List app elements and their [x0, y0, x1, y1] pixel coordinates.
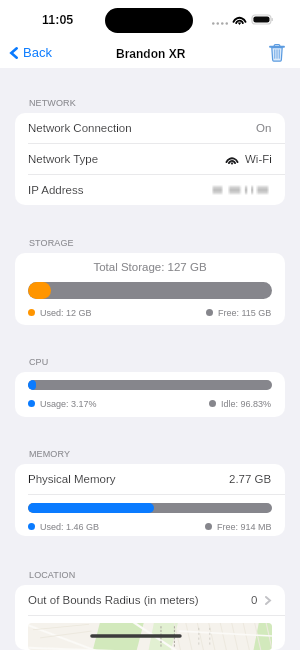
- staticText: Free: 914 MB: [217, 522, 272, 532]
- staticText: 0: [251, 594, 258, 607]
- staticText: Total Storage: 127 GB: [28, 261, 272, 275]
- staticText: Back: [23, 45, 52, 60]
- button[interactable]: Physical Memory: [15, 464, 285, 494]
- button[interactable]: IP Address: [15, 175, 285, 205]
- staticText: 2.77 GB: [229, 473, 272, 486]
- staticText: Out of Bounds Radius (in meters): [28, 594, 199, 607]
- staticText: Brandon XR: [116, 47, 186, 60]
- button[interactable]: Out of Bounds Radius (in meters): [15, 585, 285, 615]
- button[interactable]: Back: [0, 41, 60, 64]
- staticText: CPU: [29, 357, 49, 367]
- staticText: NETWORK: [29, 98, 76, 108]
- staticText: Used: 12 GB: [40, 308, 92, 318]
- staticText: Network Connection: [28, 122, 132, 135]
- button[interactable]: Network Type: [15, 144, 285, 174]
- staticText: Idle: 96.83%: [221, 399, 272, 409]
- staticText: 11:05: [42, 13, 74, 27]
- staticText: Free: 115 GB: [218, 308, 272, 318]
- staticText: Usage: 3.17%: [40, 399, 97, 409]
- staticText: On: [256, 122, 272, 135]
- staticText: MEMORY: [29, 449, 71, 459]
- staticText: Used: 1.46 GB: [40, 522, 100, 532]
- button[interactable]: Network Connection: [15, 113, 285, 143]
- button[interactable]: Delete: [262, 41, 300, 64]
- staticText: STORAGE: [29, 238, 74, 248]
- staticText: LOCATION: [29, 570, 76, 580]
- staticText: Physical Memory: [28, 473, 116, 486]
- staticText: Wi-Fi: [245, 153, 272, 166]
- staticText: IP Address: [28, 184, 84, 197]
- staticText: Network Type: [28, 153, 99, 166]
